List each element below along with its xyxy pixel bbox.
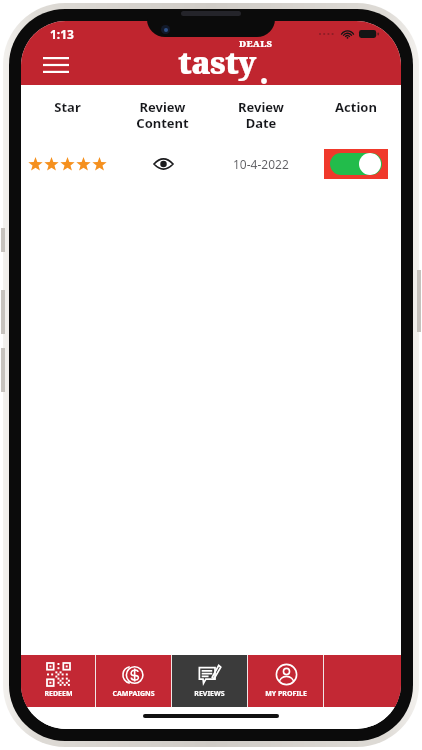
staticText: MY PROFILE (265, 689, 307, 699)
button[interactable]: CAMPAIGNS (96, 655, 171, 707)
staticText: 10-4-2022 (233, 156, 289, 172)
staticText: DEALS (239, 37, 273, 49)
staticText: Action (335, 98, 377, 116)
button[interactable]: REDEEM (21, 655, 95, 707)
button[interactable]: Tasty Deals home (178, 41, 256, 91)
staticText: Review Content (136, 98, 189, 131)
button[interactable]: Open navigation menu (37, 50, 75, 80)
staticText: REVIEWS (194, 689, 225, 699)
staticText: Review Date (238, 98, 284, 131)
button[interactable]: MY PROFILE (248, 655, 323, 707)
button[interactable]: View review content (148, 149, 178, 179)
button[interactable]: Toggle review visibility (324, 149, 388, 179)
staticText: A SMARTER WAY TO SAVE (184, 84, 251, 91)
staticText: tasty (178, 41, 256, 83)
button[interactable]: REVIEWS (172, 655, 247, 707)
staticText: REDEEM (44, 689, 73, 699)
staticText: 1:13 (50, 26, 74, 42)
staticText: Star (54, 98, 81, 116)
staticText: CAMPAIGNS (112, 689, 155, 699)
